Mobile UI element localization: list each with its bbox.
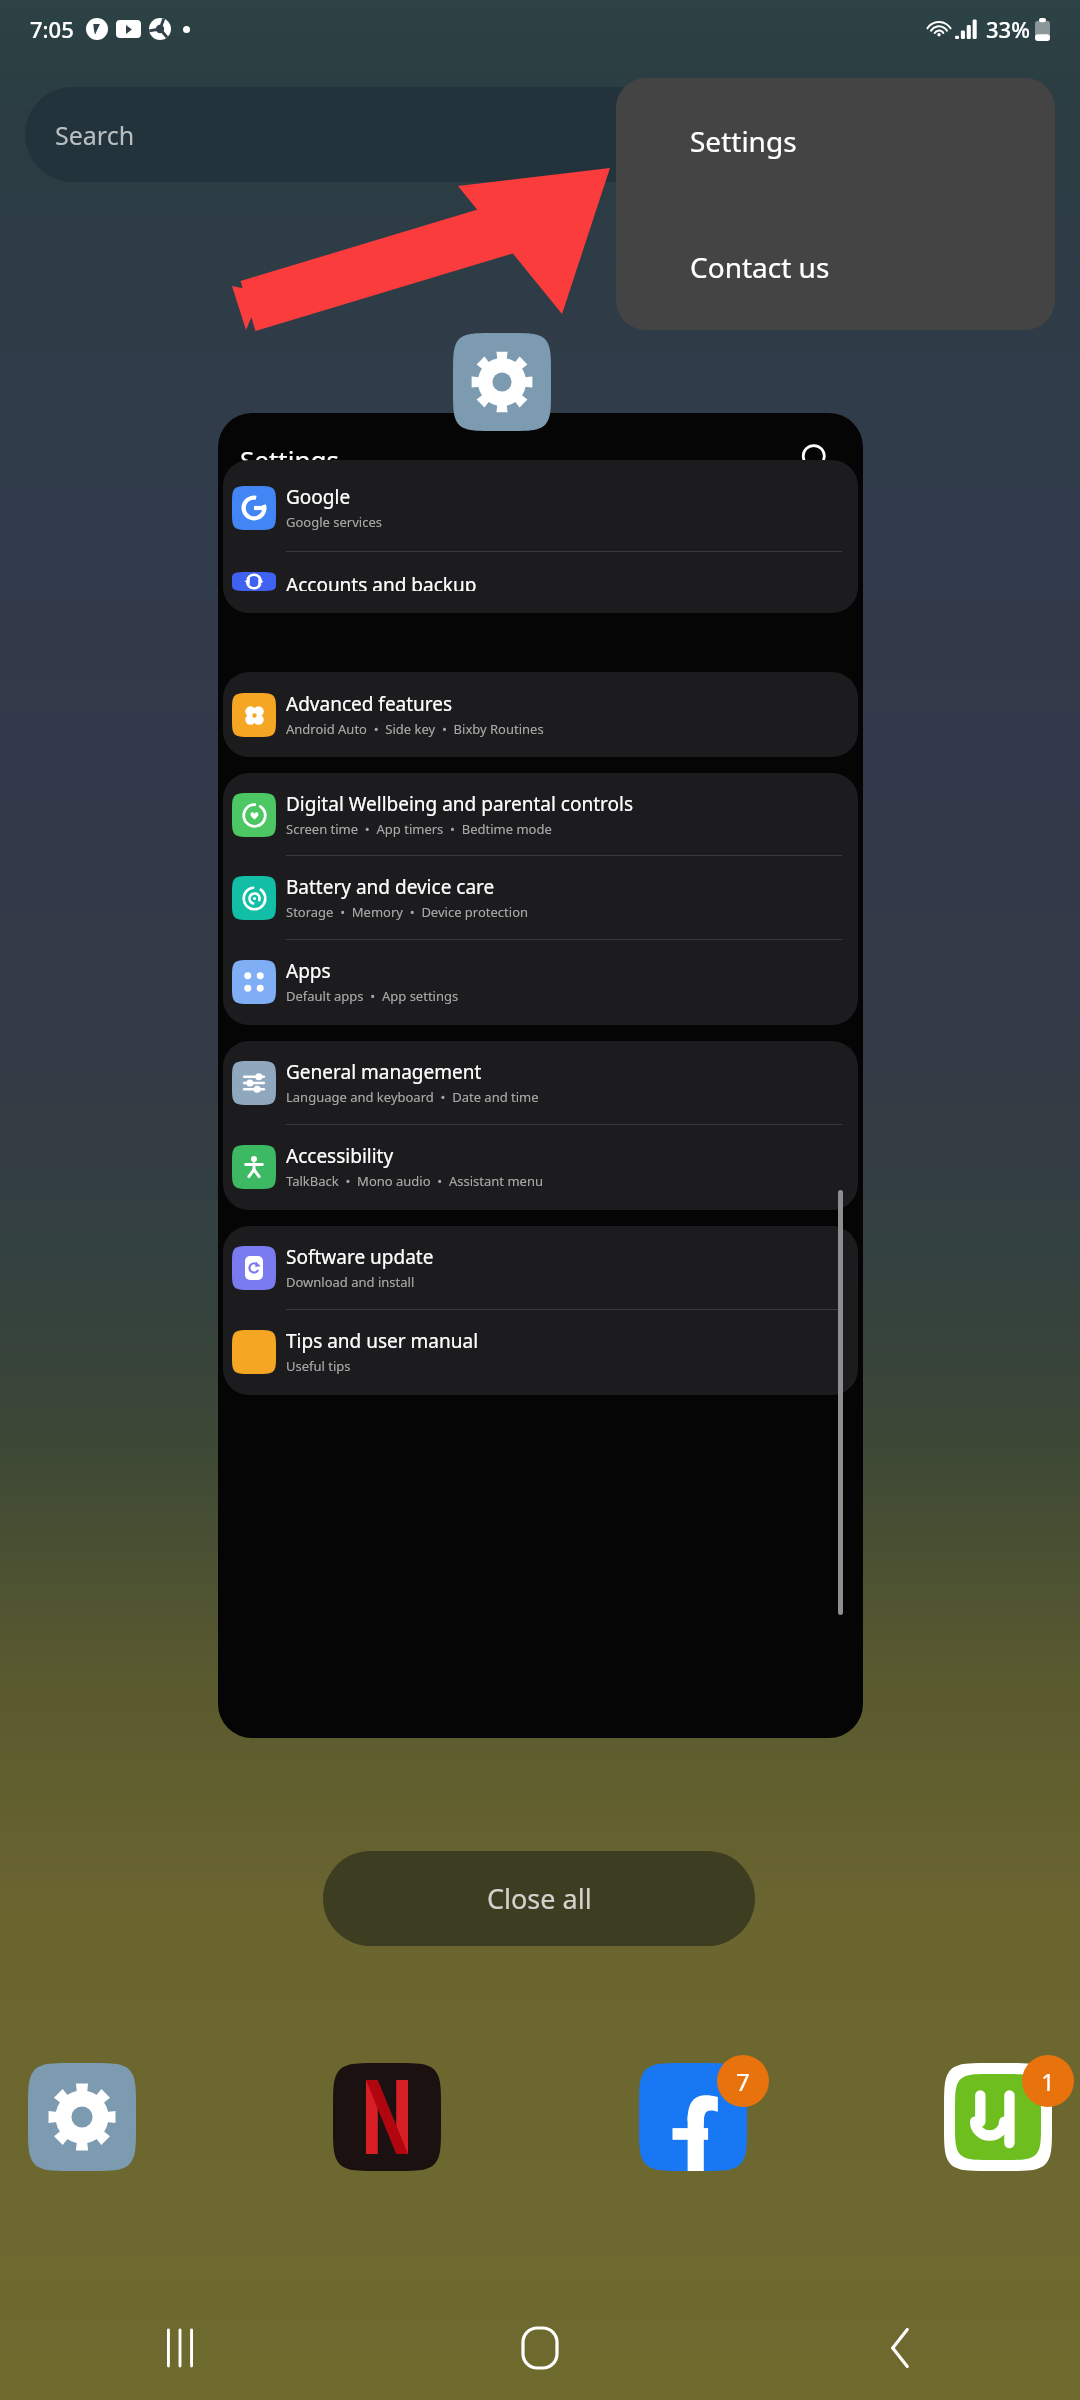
staticText: 7:05 [30, 14, 74, 44]
button[interactable]: Settings [616, 78, 1055, 204]
button[interactable]: Apps [223, 940, 858, 1025]
button[interactable]: Search [25, 87, 665, 182]
staticText: 7 [736, 2065, 750, 2098]
button[interactable]: Advanced features [223, 672, 858, 757]
button[interactable]: Recents [0, 2295, 360, 2400]
staticText: Language and keyboard • Date and time [286, 1088, 539, 1106]
staticText: Accessibility [286, 1143, 394, 1169]
staticText: 1 [1041, 2065, 1055, 2098]
staticText: Download and install [286, 1273, 415, 1291]
button[interactable]: General management [223, 1041, 858, 1125]
staticText: Contact us [690, 248, 830, 286]
button[interactable]: Digital Wellbeing and parental controls [223, 773, 858, 856]
button[interactable]: Accounts and backup [223, 552, 858, 613]
staticText: Android Auto • Side key • Bixby Routines [286, 720, 544, 738]
staticText: Settings [240, 442, 339, 477]
staticText: Apps [286, 958, 331, 984]
button[interactable]: Search settings [791, 434, 841, 484]
button[interactable]: uTorrent [944, 2063, 1052, 2171]
button[interactable]: Software update [223, 1226, 858, 1310]
staticText: Search [55, 118, 135, 152]
staticText: Default apps • App settings [286, 987, 459, 1005]
staticText: Useful tips [286, 1357, 351, 1375]
staticText: Software update [286, 1244, 434, 1270]
staticText: Accounts and backup [286, 572, 477, 591]
staticText: Storage • Memory • Device protection [286, 903, 529, 921]
staticText: Advanced features [286, 691, 453, 717]
staticText: Google services [286, 513, 382, 531]
button[interactable]: Netflix [333, 2063, 441, 2171]
staticText: General management [286, 1059, 482, 1085]
button[interactable]: Close all [323, 1851, 755, 1946]
staticText: Close all [487, 1880, 592, 1917]
button[interactable]: Settings [28, 2063, 136, 2171]
staticText: Settings [690, 122, 797, 160]
staticText: 33% [986, 14, 1030, 44]
button[interactable]: Google [223, 460, 858, 552]
staticText: Google [286, 484, 351, 510]
staticText: TalkBack • Mono audio • Assistant menu [286, 1172, 543, 1190]
button[interactable]: Contact us [616, 204, 1055, 330]
button[interactable]: Back [720, 2295, 1080, 2400]
button[interactable]: Accessibility [223, 1125, 858, 1210]
staticText: Battery and device care [286, 874, 495, 900]
staticText: Screen time • App timers • Bedtime mode [286, 820, 552, 838]
button[interactable]: Battery and device care [223, 856, 858, 940]
button[interactable]: Tips and user manual [223, 1310, 858, 1395]
button[interactable]: Home [360, 2295, 720, 2400]
staticText: Tips and user manual [286, 1328, 479, 1354]
button[interactable]: Facebook [639, 2063, 747, 2171]
staticText: Digital Wellbeing and parental controls [286, 791, 634, 817]
